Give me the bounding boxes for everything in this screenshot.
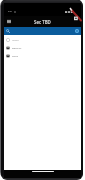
button[interactable]: Navigation menu bbox=[5, 18, 12, 25]
staticText: 9:41 bbox=[8, 10, 13, 13]
button[interactable]: Internal bbox=[4, 52, 81, 60]
button[interactable]: Request this bbox=[4, 44, 81, 52]
staticText: Request this bbox=[12, 47, 22, 49]
staticText: Software bbox=[12, 39, 19, 41]
button[interactable]: Account bbox=[75, 29, 79, 33]
button[interactable]: Software bbox=[4, 36, 81, 44]
staticText: Sec TBD bbox=[34, 19, 51, 25]
button[interactable]: Account bbox=[4, 27, 81, 35]
staticText: Internal bbox=[12, 55, 18, 57]
